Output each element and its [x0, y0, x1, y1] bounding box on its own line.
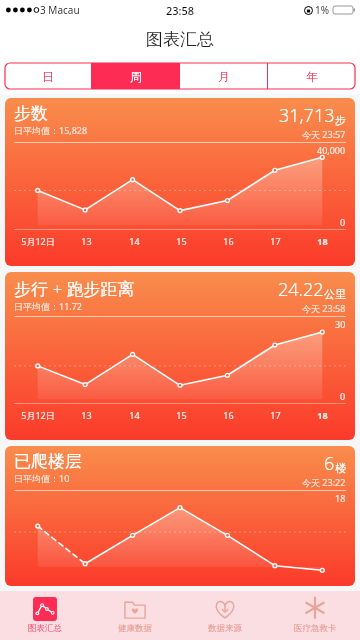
staticText: 今天 23:57 [302, 128, 346, 140]
button[interactable]: 数据来源 [180, 591, 270, 640]
staticText: 18 [317, 409, 328, 421]
button[interactable]: 年 [268, 63, 355, 89]
staticText: 6 [324, 451, 335, 476]
staticText: 40,000 [317, 144, 346, 156]
staticText: 医疗急救卡 [294, 623, 337, 634]
staticText: 步 [335, 113, 346, 127]
button[interactable]: 健康数据 [90, 591, 180, 640]
staticText: 24.22 [278, 277, 324, 302]
button[interactable]: 步行 + 跑步距离 [5, 272, 355, 440]
button[interactable]: 医疗急救卡 [270, 591, 360, 640]
staticText: 日平均值：15,828 [14, 124, 88, 136]
staticText: 18 [335, 492, 346, 504]
staticText: 14 [129, 235, 140, 247]
staticText: 0 [340, 216, 346, 228]
staticText: 今天 23:22 [302, 476, 346, 488]
staticText: 30 [335, 318, 346, 330]
staticText: 14 [129, 409, 140, 421]
staticText: 图表汇总 [28, 623, 62, 634]
staticText: 日平均值：10 [14, 472, 70, 484]
staticText: 18 [317, 235, 328, 247]
staticText: 5月12日 [21, 409, 55, 421]
staticText: 15 [176, 235, 187, 247]
staticText: 31,713 [279, 103, 335, 128]
staticText: 0 [340, 390, 346, 402]
staticText: 16 [223, 235, 234, 247]
staticText: 1% [315, 3, 330, 17]
button[interactable]: 月 [180, 63, 267, 89]
staticText: 日 [42, 69, 54, 84]
staticText: 周 [130, 69, 142, 84]
staticText: 年 [306, 69, 318, 84]
staticText: 今天 23:58 [302, 302, 346, 314]
staticText: 已爬楼层 [14, 451, 82, 472]
button[interactable]: 已爬楼层 [5, 446, 355, 586]
staticText: 5月12日 [21, 235, 55, 247]
staticText: 楼 [335, 461, 346, 475]
staticText: 23:58 [166, 3, 195, 18]
staticText: 月 [218, 69, 230, 84]
staticText: 17 [270, 235, 281, 247]
staticText: 数据来源 [208, 623, 242, 634]
staticText: 步行 + 跑步距离 [14, 277, 135, 300]
staticText: 图表汇总 [146, 29, 214, 50]
staticText: 步数 [14, 103, 48, 124]
button[interactable]: 周 [92, 63, 179, 89]
staticText: 3 Macau [40, 3, 80, 17]
staticText: 17 [270, 409, 281, 421]
staticText: 13 [81, 235, 92, 247]
staticText: 公里 [324, 287, 346, 301]
staticText: 15 [176, 409, 187, 421]
staticText: 日平均值：11.72 [14, 300, 83, 312]
button[interactable]: 图表汇总 [0, 591, 90, 640]
staticText: 健康数据 [118, 623, 152, 634]
button[interactable]: 日 [5, 63, 91, 89]
button[interactable]: 步数 [5, 98, 355, 266]
staticText: 16 [223, 409, 234, 421]
staticText: 13 [81, 409, 92, 421]
